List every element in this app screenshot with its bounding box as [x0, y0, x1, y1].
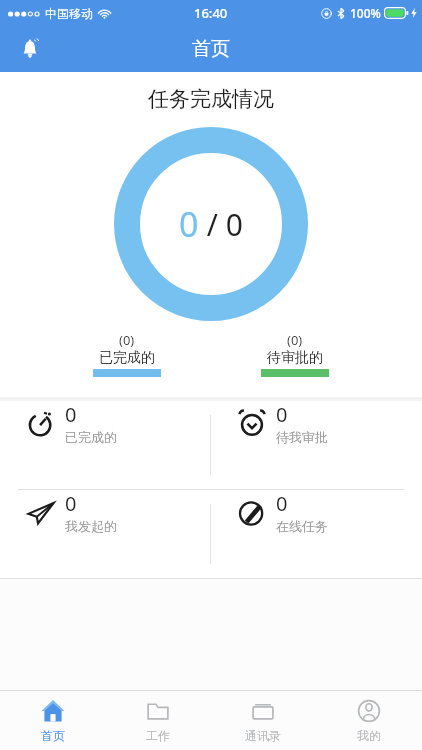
staticText: 首页 [192, 37, 230, 61]
staticText: 0 [65, 490, 77, 517]
staticText: 待审批的 [267, 349, 323, 367]
button[interactable]: 0 [211, 401, 422, 445]
button[interactable]: 我的 [316, 691, 422, 750]
staticText: 0 [179, 201, 199, 247]
staticText: 首页 [41, 728, 65, 743]
staticText: 工作 [146, 728, 170, 743]
button[interactable]: 0 [0, 401, 210, 445]
staticText: (0) [287, 331, 303, 349]
staticText: 已完成的 [99, 349, 155, 367]
staticText: 0 [65, 401, 77, 428]
staticText: 我发起的 [65, 518, 117, 534]
staticText: 待我审批 [276, 429, 328, 445]
staticText: 0 [276, 401, 288, 428]
staticText: 0 [276, 490, 288, 517]
staticText: 100% [350, 5, 381, 21]
button[interactable]: (0) [255, 329, 335, 379]
button[interactable]: 0 [0, 490, 210, 534]
staticText: / 0 [199, 204, 243, 245]
button[interactable]: 通讯录 [210, 691, 316, 750]
staticText: (0) [119, 331, 135, 349]
button[interactable]: 工作 [105, 691, 210, 750]
button[interactable]: 0 [211, 490, 422, 534]
button[interactable]: Notifications [10, 29, 50, 69]
staticText: 在线任务 [276, 518, 328, 534]
staticText: 中国移动 [45, 6, 93, 21]
staticText: 任务完成情况 [148, 86, 274, 112]
staticText: 已完成的 [65, 429, 117, 445]
staticText: 通讯录 [245, 728, 281, 743]
button[interactable]: 首页 [0, 691, 105, 750]
staticText: 16:40 [194, 4, 228, 22]
button[interactable]: (0) [87, 329, 167, 379]
staticText: 我的 [357, 728, 381, 743]
